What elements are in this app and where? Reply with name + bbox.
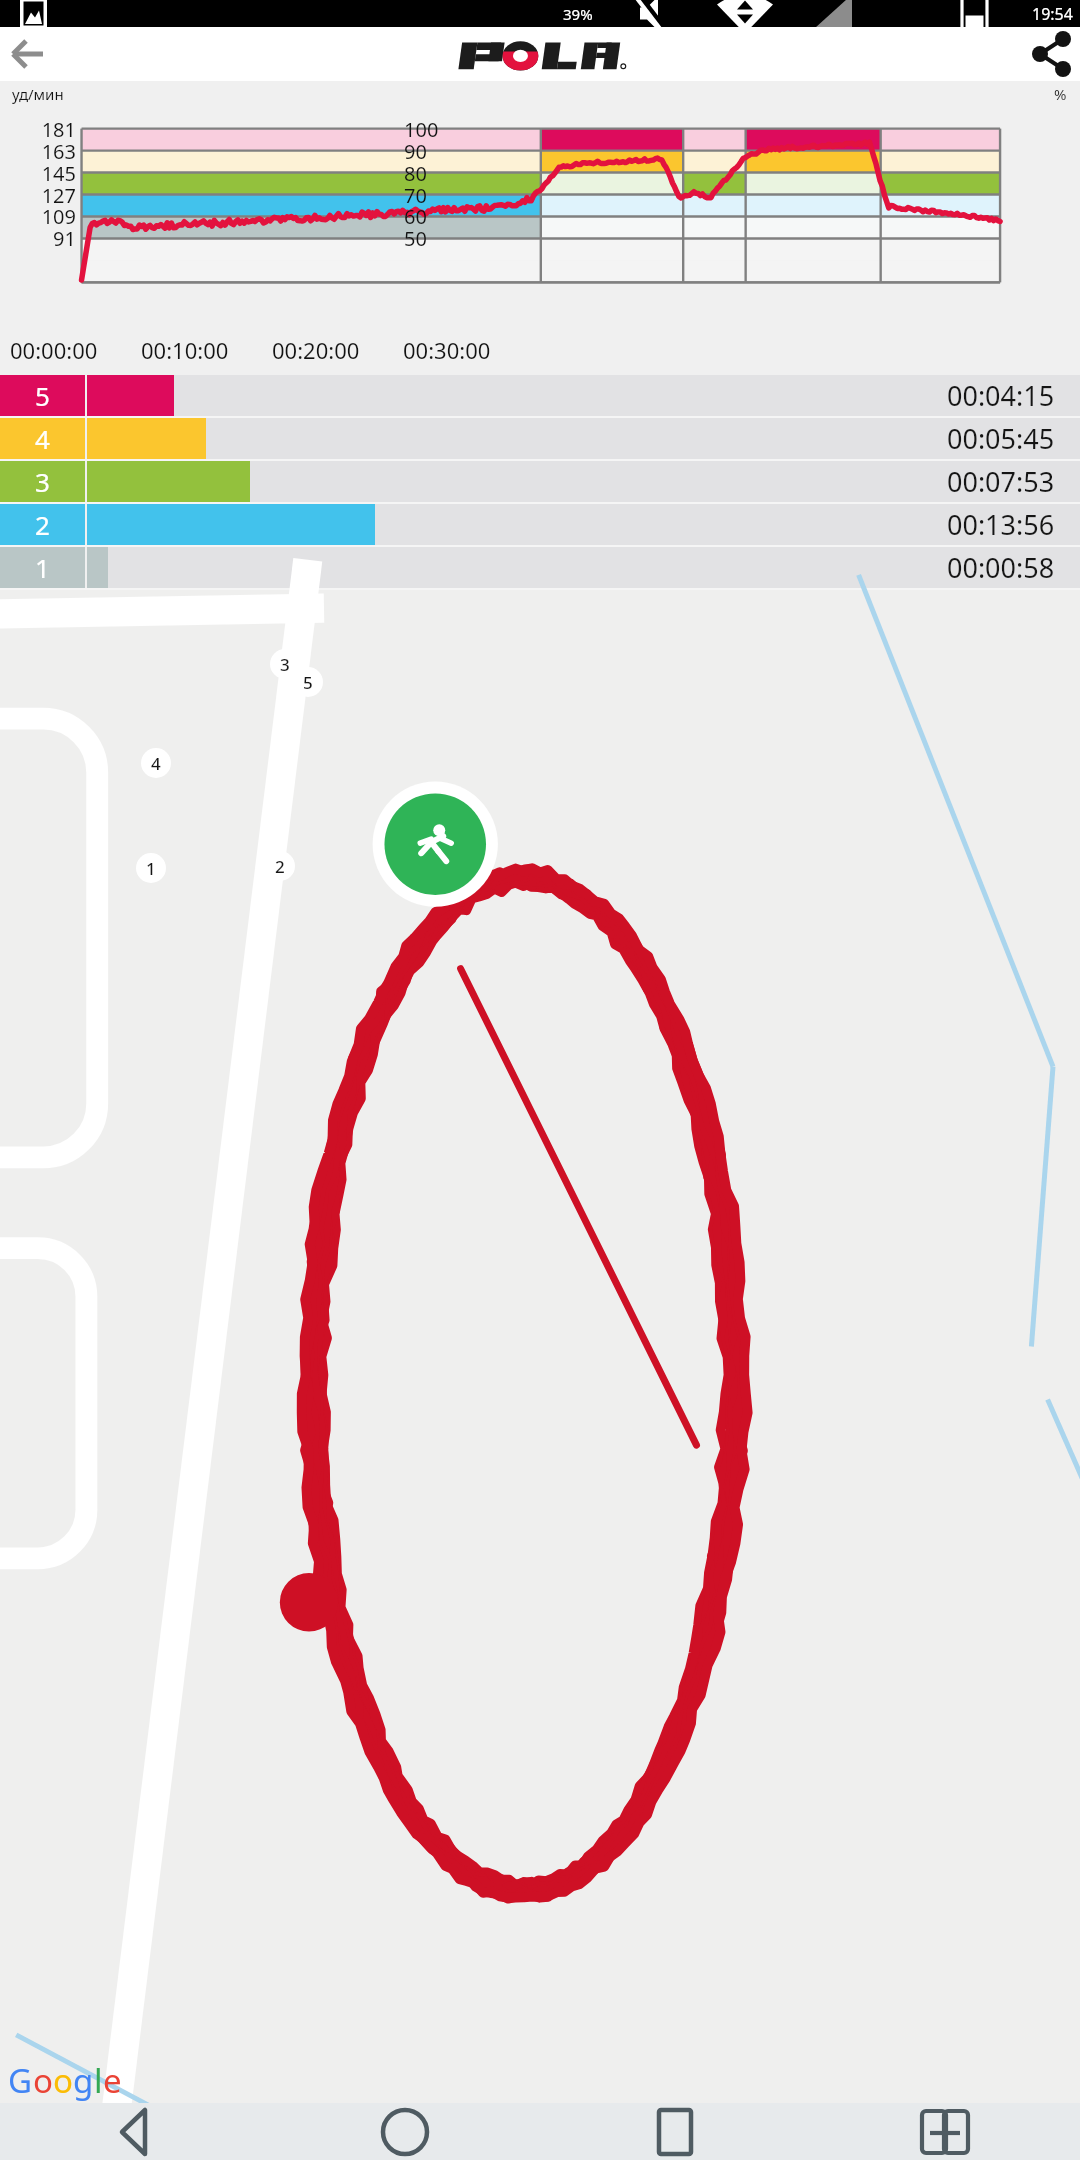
staticText: 90 (404, 138, 464, 165)
staticText: 2 (275, 855, 285, 878)
staticText: 19:54 (1032, 3, 1073, 25)
staticText: 4 (151, 752, 161, 775)
staticText: 00:10:00 (141, 335, 229, 365)
button[interactable]: Back (0, 2103, 270, 2160)
staticText: 3 (35, 464, 50, 499)
staticText: o (33, 2058, 53, 2103)
staticText: l (94, 2058, 103, 2103)
staticText: 2 (35, 507, 50, 542)
button[interactable]: Recent apps (540, 2103, 810, 2160)
button[interactable]: Back (0, 27, 56, 81)
staticText: 3 (280, 653, 290, 676)
staticText: 4 (35, 421, 50, 456)
staticText: 127 (6, 182, 76, 209)
staticText: 00:04:15 (947, 377, 1055, 414)
staticText: 00:13:56 (947, 506, 1055, 543)
button[interactable]: 3 (0, 461, 1080, 502)
button[interactable]: Share (1024, 27, 1080, 81)
staticText: 00:00:58 (947, 549, 1055, 586)
staticText: 39% (563, 4, 593, 24)
staticText: 100 (404, 116, 464, 143)
staticText: 109 (6, 203, 76, 230)
button[interactable]: 5 (0, 375, 1080, 416)
staticText: 00:30:00 (403, 335, 491, 365)
staticText: 1 (35, 550, 50, 585)
staticText: 00:00:00 (10, 335, 98, 365)
staticText: 91 (6, 225, 76, 252)
staticText: 00:05:45 (947, 420, 1055, 457)
button[interactable]: Route map (0, 590, 1080, 2103)
staticText: o (53, 2058, 73, 2103)
staticText: уд/мин (12, 84, 64, 104)
staticText: G (8, 2058, 33, 2103)
button[interactable]: Home (270, 2103, 540, 2160)
staticText: 00:07:53 (947, 463, 1055, 500)
staticText: 5 (303, 671, 313, 694)
staticText: 145 (6, 160, 76, 187)
button[interactable]: 1 (0, 547, 1080, 588)
staticText: 50 (404, 225, 464, 252)
staticText: 70 (404, 182, 464, 209)
staticText: 00:20:00 (272, 335, 360, 365)
button[interactable]: Switch app (810, 2103, 1080, 2160)
staticText: 163 (6, 138, 76, 165)
button[interactable]: 4 (0, 418, 1080, 459)
staticText: g (73, 2058, 94, 2103)
button[interactable]: 2 (0, 504, 1080, 545)
staticText: 1 (146, 857, 156, 880)
staticText: 181 (6, 116, 76, 143)
staticText: e (103, 2058, 122, 2103)
staticText: 5 (35, 378, 50, 413)
staticText: 60 (404, 203, 464, 230)
staticText: 80 (404, 160, 464, 187)
staticText: % (1054, 84, 1067, 104)
